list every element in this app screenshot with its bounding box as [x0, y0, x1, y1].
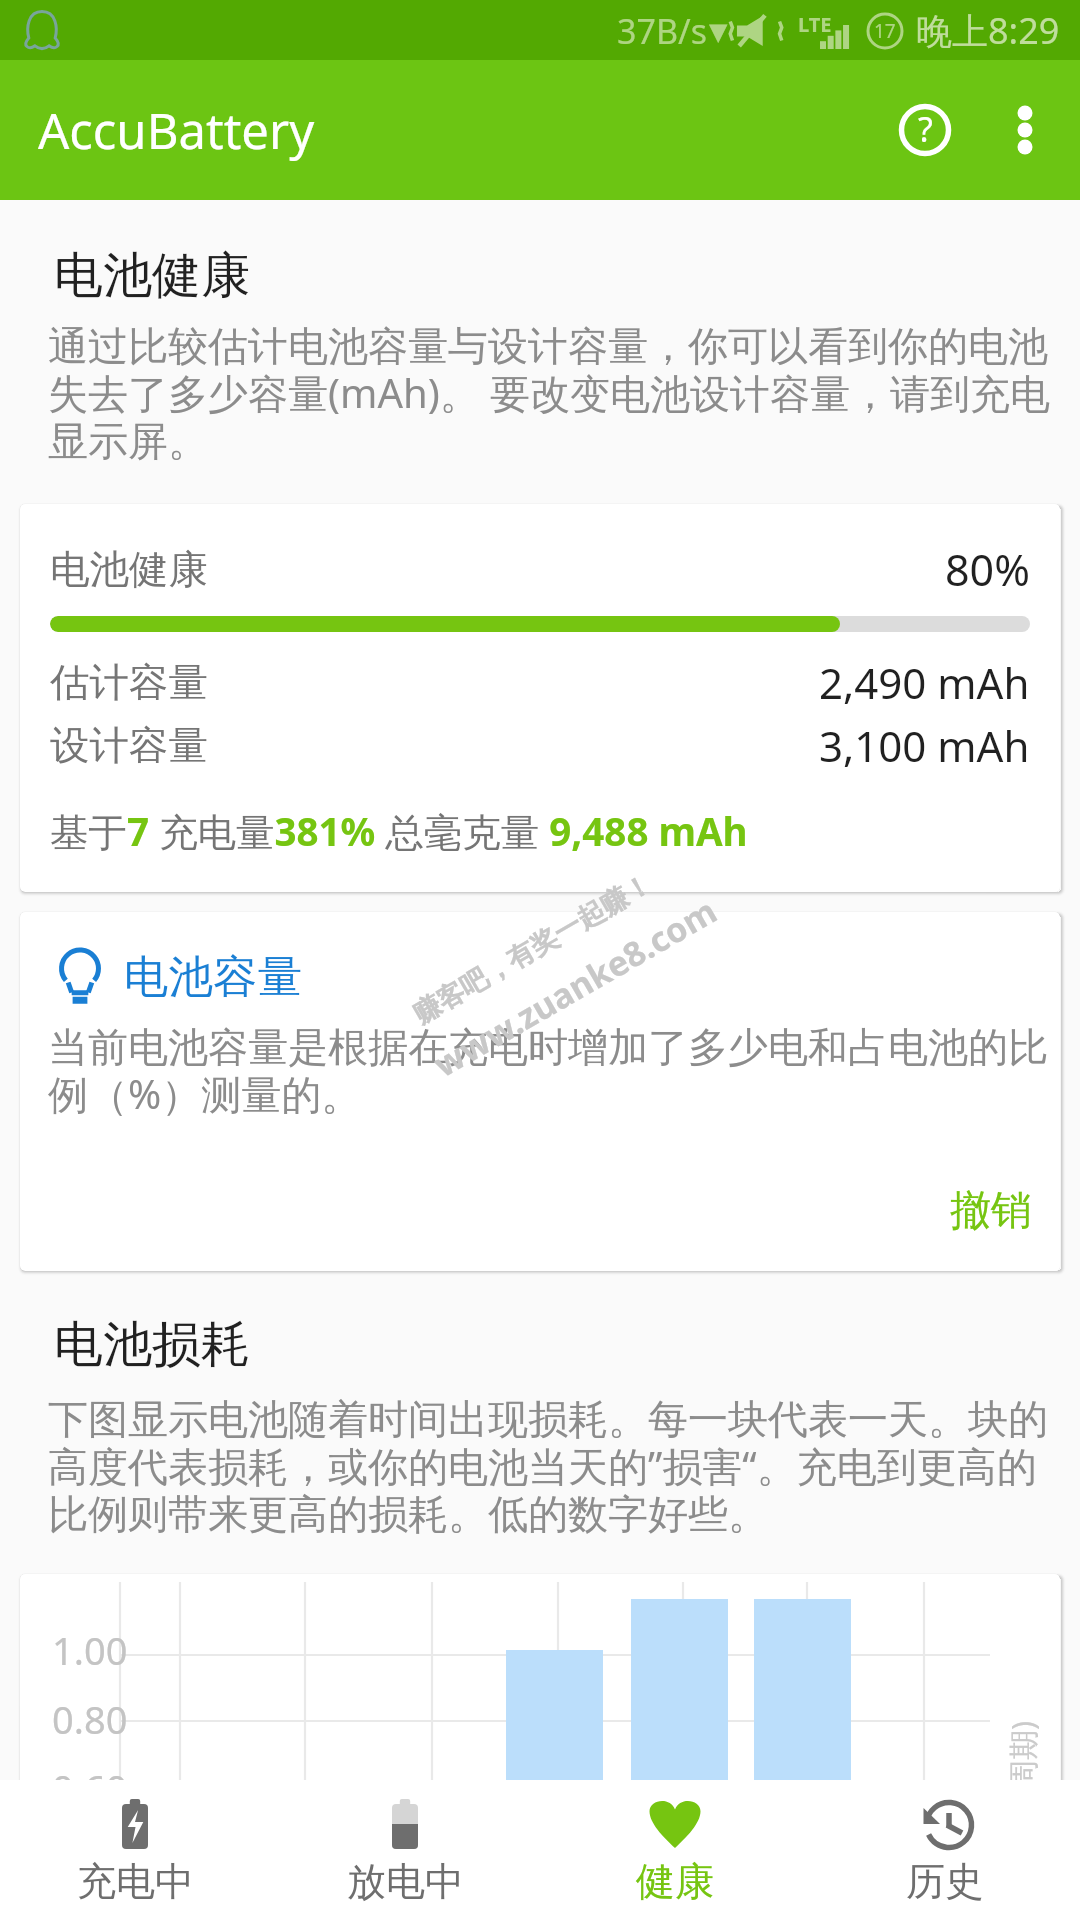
staticText: 下图显示电池随着时间出现损耗。每一块代表一天。块的高度代表损耗，或你的电池当天的…	[48, 1394, 1068, 1540]
staticText: ?	[918, 106, 933, 152]
button[interactable]: More options	[975, 80, 1075, 180]
staticText: 当前电池容量是根据在充电时增加了多少电和占电池的比例（%）测量的。	[48, 1022, 1052, 1121]
staticText: 0.60	[52, 1762, 128, 1814]
staticText: 电池健康	[54, 245, 250, 307]
staticText: LTE	[798, 11, 832, 38]
staticText: 0.80	[52, 1693, 128, 1745]
button[interactable]: 历史	[810, 1780, 1080, 1920]
staticText: 估计容量	[50, 658, 208, 708]
staticText: 晚上8:29	[916, 6, 1060, 55]
staticText: 撤销	[950, 1185, 1032, 1237]
staticText: ▼	[709, 18, 728, 46]
staticText: 赚客吧，有奖一起赚！	[407, 867, 658, 1031]
staticText: 通过比较估计电池容量与设计容量，你可以看到你的电池失去了多少容量(mAh)。 要…	[48, 321, 1068, 467]
staticText: 电池健康	[50, 545, 208, 595]
staticText: 3,100 mAh	[819, 717, 1030, 774]
staticText: 1.00	[52, 1624, 128, 1676]
button[interactable]: 健康	[540, 1780, 810, 1920]
button[interactable]: 撤销	[942, 1181, 1052, 1241]
button[interactable]: 充电中	[0, 1780, 270, 1920]
staticText: AccuBattery	[38, 97, 315, 164]
staticText: 周期)	[1002, 1721, 1043, 1790]
staticText: 放电中	[347, 1857, 464, 1906]
staticText: 基于7 充电量381% 总毫克量 9,488 mAh	[50, 805, 748, 858]
staticText: 电池损耗	[54, 1314, 250, 1376]
staticText: 37B/s	[617, 8, 707, 54]
staticText: 17	[874, 18, 896, 44]
button[interactable]: Help	[875, 80, 975, 180]
staticText: 充电中	[77, 1857, 194, 1906]
staticText: www.zuanke8.com	[425, 887, 725, 1087]
staticText: 电池容量	[124, 949, 302, 1005]
staticText: 健康	[636, 1857, 714, 1906]
staticText: 2,490 mAh	[819, 654, 1030, 711]
staticText: 历史	[906, 1857, 984, 1906]
staticText: 80%	[945, 540, 1030, 599]
staticText: 设计容量	[50, 721, 208, 771]
button[interactable]: 放电中	[270, 1780, 540, 1920]
